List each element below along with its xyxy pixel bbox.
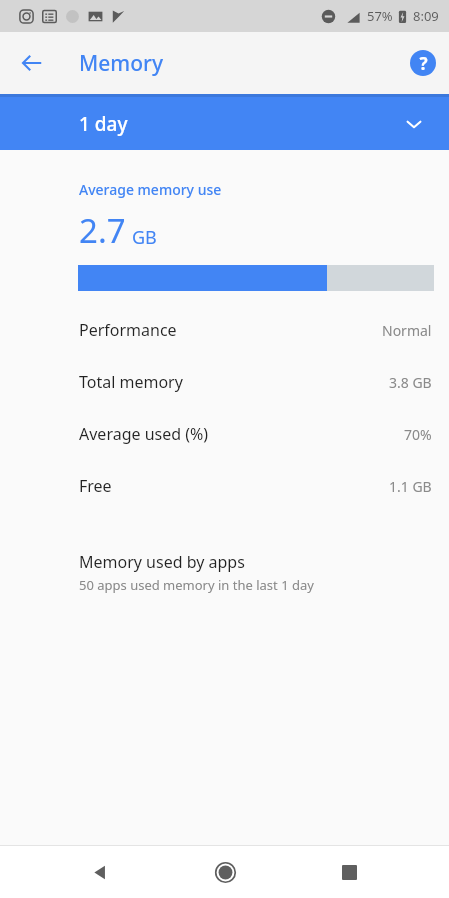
staticText: 1.1 GB [389, 477, 432, 496]
staticText: Memory [79, 49, 164, 78]
staticText: 57% [367, 7, 393, 25]
staticText: 1 day [79, 111, 128, 137]
staticText: 50 apps used memory in the last 1 day [79, 576, 314, 594]
button[interactable]: Home [203, 850, 247, 894]
button[interactable]: Back [12, 43, 52, 83]
staticText: GB [132, 225, 157, 250]
staticText: Memory used by apps [79, 551, 245, 573]
button[interactable]: Recent apps [327, 850, 371, 894]
staticText: 2.7 [79, 208, 126, 253]
button[interactable]: Average used (%) [0, 408, 449, 460]
staticText: 8:09 [413, 7, 439, 25]
button[interactable]: Back [78, 850, 122, 894]
button[interactable]: Free [0, 460, 449, 512]
staticText: Free [79, 475, 112, 497]
button[interactable]: Memory used by apps [0, 549, 449, 600]
button[interactable]: Performance [0, 304, 449, 356]
staticText: 3.8 GB [389, 373, 432, 392]
staticText: ? [419, 52, 428, 75]
staticText: Total memory [79, 371, 183, 393]
staticText: Average used (%) [79, 423, 209, 445]
staticText: Average memory use [79, 180, 222, 199]
staticText: Performance [79, 319, 177, 341]
button[interactable]: 1 day [0, 97, 449, 150]
staticText: Normal [382, 321, 432, 340]
button[interactable]: Total memory [0, 356, 449, 408]
staticText: 70% [404, 425, 432, 444]
button[interactable]: Help [403, 43, 443, 83]
